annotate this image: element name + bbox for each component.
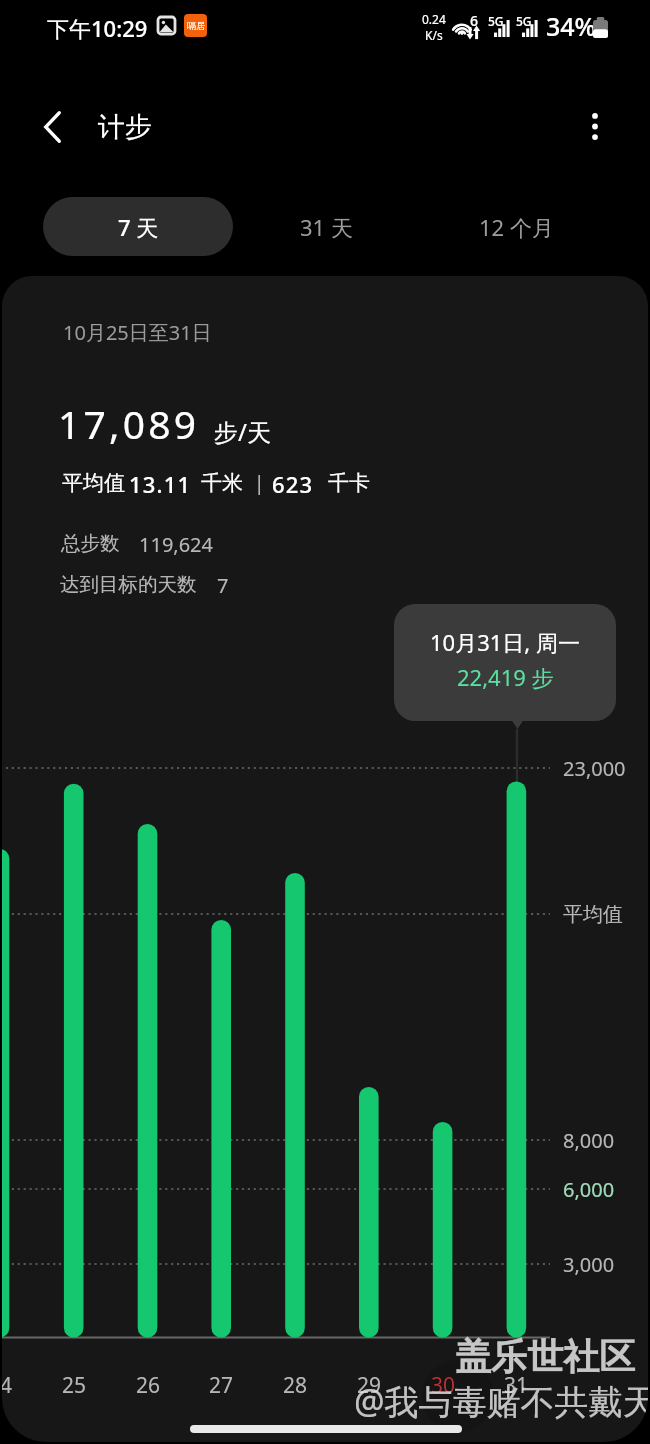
staticText: 27 bbox=[209, 1371, 234, 1400]
staticText: 623 bbox=[272, 469, 314, 499]
staticText: 0.24 bbox=[422, 11, 446, 27]
staticText: 31 天 bbox=[300, 212, 353, 242]
staticText: 31 bbox=[504, 1371, 529, 1400]
staticText: 25 bbox=[62, 1371, 87, 1400]
staticText: 12 个月 bbox=[479, 212, 554, 242]
staticText: 5G bbox=[516, 13, 532, 29]
button[interactable]: Back bbox=[26, 101, 78, 153]
staticText: 26 bbox=[136, 1371, 161, 1400]
staticText: 6 bbox=[470, 11, 479, 30]
staticText: | bbox=[254, 470, 265, 496]
staticText: 22,419 步 bbox=[457, 662, 554, 692]
staticText: 30 bbox=[431, 1371, 456, 1400]
button[interactable]: 31 天 bbox=[246, 197, 406, 256]
staticText: 13.11 bbox=[129, 469, 192, 499]
staticText: 总步数 bbox=[61, 531, 120, 556]
staticText: 达到目标的天数 bbox=[60, 572, 197, 597]
staticText: 29 bbox=[357, 1371, 382, 1400]
staticText: 步/天 bbox=[214, 415, 271, 448]
staticText: 计步 bbox=[98, 110, 152, 144]
staticText: 10月25日至31日 bbox=[63, 319, 212, 346]
staticText: 119,624 bbox=[139, 531, 213, 558]
button[interactable]: 12 个月 bbox=[426, 197, 606, 256]
staticText: 平均值 bbox=[563, 902, 623, 927]
staticText: K/s bbox=[425, 27, 443, 43]
staticText: 8,000 bbox=[563, 1127, 615, 1154]
staticText: 10月31日, 周一 bbox=[430, 627, 580, 657]
staticText: 3,000 bbox=[563, 1251, 615, 1278]
staticText: 5G bbox=[488, 13, 504, 29]
staticText: 千米 bbox=[201, 470, 243, 496]
staticText: 下午10:29 bbox=[47, 13, 148, 43]
staticText: 7 bbox=[217, 572, 229, 599]
staticText: 嗝居 bbox=[187, 20, 205, 31]
staticText: 24 bbox=[2, 1371, 13, 1400]
staticText: 7 天 bbox=[118, 212, 159, 242]
staticText: 34% bbox=[546, 9, 596, 43]
staticText: 平均值 bbox=[62, 470, 125, 496]
staticText: 盖乐世社区 bbox=[455, 1334, 635, 1379]
staticText: 23,000 bbox=[563, 755, 626, 782]
button[interactable]: 7 天 bbox=[43, 197, 233, 256]
staticText: 17,089 bbox=[58, 397, 200, 450]
staticText: @我与毒赌不共戴天 bbox=[354, 1378, 648, 1424]
staticText: 千卡 bbox=[328, 470, 370, 496]
staticText: 6,000 bbox=[563, 1176, 615, 1203]
staticText: 28 bbox=[283, 1371, 308, 1400]
button[interactable]: More options bbox=[569, 100, 621, 152]
